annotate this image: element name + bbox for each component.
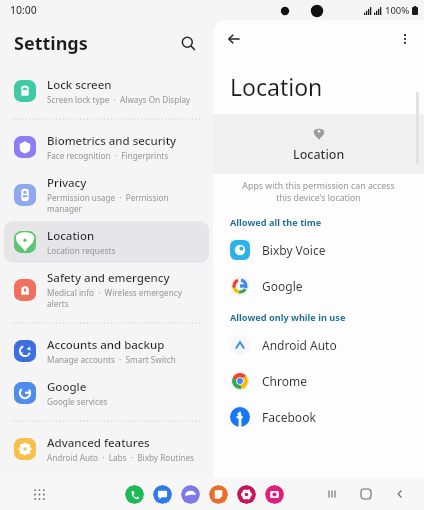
staticText: Permission usage · Permission manager [47,192,203,214]
button[interactable]: Home [356,484,376,504]
button[interactable]: Back [221,26,247,52]
button[interactable]: Recents [322,484,342,504]
button[interactable]: Google [4,372,209,414]
staticText: 10:00 [10,3,37,17]
button[interactable]: Bixby Voice [213,232,424,268]
button[interactable]: Messages [153,485,172,504]
button[interactable]: Search [173,28,203,58]
staticText: Settings [14,31,88,56]
staticText: Google [262,278,303,294]
button[interactable]: Android Auto [213,327,424,363]
staticText: Google services [47,396,108,407]
staticText: Safety and emergency [47,270,170,286]
staticText: Location requests [47,245,116,256]
button[interactable]: Location [4,221,209,263]
staticText: Screen lock type · Always On Display [47,94,191,105]
staticText: Accounts and backup [47,337,165,353]
button[interactable]: Safety and emergency [4,263,209,316]
staticText: Bixby Voice [262,242,326,258]
staticText: Android Auto [262,337,337,353]
button[interactable]: Back [390,484,410,504]
button[interactable]: Instagram [265,485,284,504]
button[interactable]: Privacy [4,168,209,221]
staticText: Manage accounts · Smart Switch [47,354,176,365]
staticText: Google [47,379,87,395]
staticText: Allowed all the time [230,216,322,229]
button[interactable]: Chrome [213,363,424,399]
staticText: Medical info · Wireless emergency alerts [47,287,203,309]
button[interactable]: Notes [209,485,228,504]
staticText: Biometrics and security [47,133,177,149]
staticText: 100% [385,4,410,17]
button[interactable]: Accounts and backup [4,330,209,372]
button[interactable]: Advanced features [4,428,209,470]
button[interactable]: Biometrics and security [4,126,209,168]
staticText: Advanced features [47,435,150,451]
staticText: Android Auto · Labs · Bixby Routines [47,452,194,463]
staticText: Location [293,146,345,163]
staticText: Location [230,71,323,102]
button[interactable]: More options [392,26,418,52]
button[interactable]: Samsung Internet [181,485,200,504]
button[interactable]: Phone [125,485,144,504]
staticText: Apps with this permission can access thi… [227,180,410,204]
staticText: Facebook [262,409,316,425]
staticText: Privacy [47,175,87,191]
button[interactable]: Lock screen [4,70,209,112]
staticText: Allowed only while in use [230,311,346,324]
staticText: Face recognition · Fingerprints [47,150,169,161]
button[interactable]: Google [213,268,424,304]
staticText: Location [47,228,95,244]
staticText: Lock screen [47,77,112,93]
staticText: Chrome [262,373,307,389]
button[interactable]: Gallery [237,485,256,504]
button[interactable]: All apps [28,483,50,505]
button[interactable]: Facebook [213,399,424,435]
